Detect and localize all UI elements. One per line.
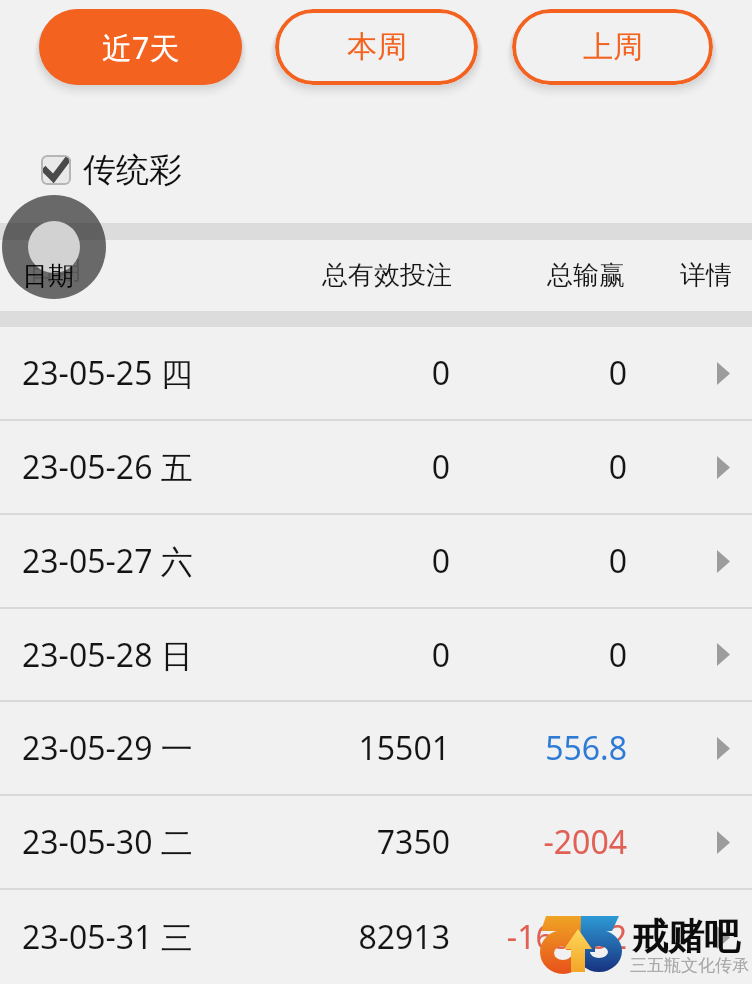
- staticText: 0: [246, 539, 450, 583]
- other: Details: [717, 737, 730, 760]
- button[interactable]: 详情: [680, 259, 732, 292]
- button[interactable]: 23-05-28 日: [0, 609, 752, 700]
- staticText: 0: [443, 633, 627, 677]
- button[interactable]: 传统彩: [41, 149, 182, 191]
- button[interactable]: 总有效投注: [322, 259, 452, 292]
- staticText: 23-05-26 五: [22, 445, 193, 489]
- button[interactable]: 上周: [512, 9, 713, 85]
- other: Details: [717, 926, 730, 949]
- button[interactable]: 23-05-25 四: [0, 327, 752, 419]
- staticText: 日期: [29, 254, 81, 287]
- staticText: 0: [443, 539, 627, 583]
- staticText: 23-05-29 一: [22, 726, 193, 770]
- staticText: 7350: [246, 820, 450, 864]
- button[interactable]: 23-05-30 二: [0, 796, 752, 888]
- staticText: 戒赌吧: [632, 914, 740, 959]
- staticText: -163252: [443, 915, 627, 959]
- staticText: 23-05-28 日: [22, 633, 193, 677]
- staticText: 近7天: [102, 27, 180, 68]
- staticText: 0: [246, 351, 450, 395]
- staticText: 23-05-27 六: [22, 539, 193, 583]
- button[interactable]: 本周: [275, 9, 478, 85]
- staticText: 0: [246, 633, 450, 677]
- staticText: 上周: [583, 28, 643, 66]
- other: Details: [717, 362, 730, 385]
- other: Details: [717, 456, 730, 479]
- other: Details: [717, 550, 730, 573]
- staticText: 日期: [22, 260, 74, 293]
- button[interactable]: 23-05-26 五: [0, 421, 752, 513]
- button[interactable]: 23-05-29 一: [0, 702, 752, 794]
- staticText: 0: [443, 445, 627, 489]
- staticText: 23-05-30 二: [22, 820, 193, 864]
- other: Touch indicator: [0, 0, 752, 984]
- staticText: 15501: [246, 726, 450, 770]
- other: Details: [717, 831, 730, 854]
- staticText: 0: [443, 351, 627, 395]
- staticText: 23-05-31 三: [22, 915, 193, 959]
- button[interactable]: 总输赢: [547, 259, 625, 292]
- staticText: 传统彩: [83, 149, 182, 191]
- button[interactable]: 23-05-27 六: [0, 515, 752, 607]
- staticText: 82913: [246, 915, 450, 959]
- staticText: -2004: [443, 820, 627, 864]
- staticText: 23-05-25 四: [22, 351, 193, 395]
- staticText: 三五瓶文化传承: [630, 955, 749, 976]
- staticText: 本周: [347, 28, 407, 66]
- other: Details: [717, 643, 730, 666]
- button[interactable]: 23-05-31 三: [0, 890, 752, 984]
- staticText: 0: [246, 445, 450, 489]
- staticText: 556.8: [443, 726, 627, 770]
- button[interactable]: 近7天: [39, 9, 242, 85]
